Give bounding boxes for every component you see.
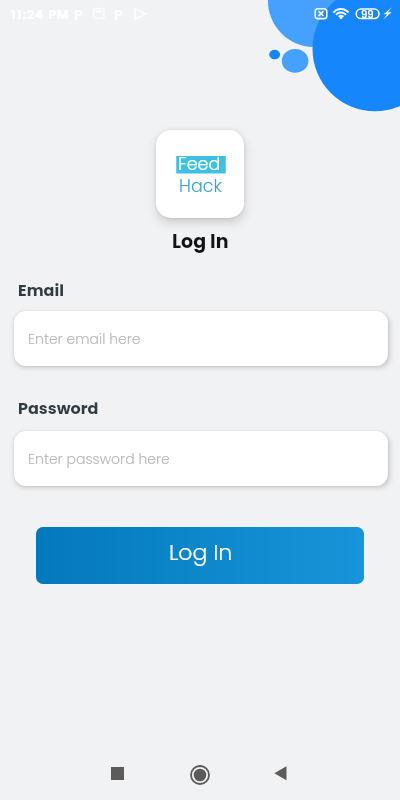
staticText: Log In xyxy=(172,228,229,255)
button[interactable]: Enter email here xyxy=(14,311,388,366)
staticText: 99 xyxy=(361,7,374,21)
staticText: P xyxy=(114,5,123,25)
button[interactable]: Recent apps xyxy=(99,755,135,791)
button[interactable]: Enter password here xyxy=(14,431,388,486)
staticText: Hack xyxy=(179,174,222,199)
button[interactable]: Back xyxy=(263,755,299,791)
staticText: Email xyxy=(18,279,64,301)
staticText: Log In xyxy=(169,537,233,568)
button[interactable]: Home xyxy=(182,757,218,793)
staticText: P xyxy=(74,5,83,25)
staticText: Feed xyxy=(178,152,221,177)
staticText: Enter password here xyxy=(28,449,170,469)
button[interactable]: Feed xyxy=(156,130,244,218)
staticText: 11:24 PM xyxy=(11,6,70,23)
staticText: Enter email here xyxy=(28,329,141,349)
staticText: Password xyxy=(18,397,99,419)
button[interactable]: Log In xyxy=(36,527,364,584)
